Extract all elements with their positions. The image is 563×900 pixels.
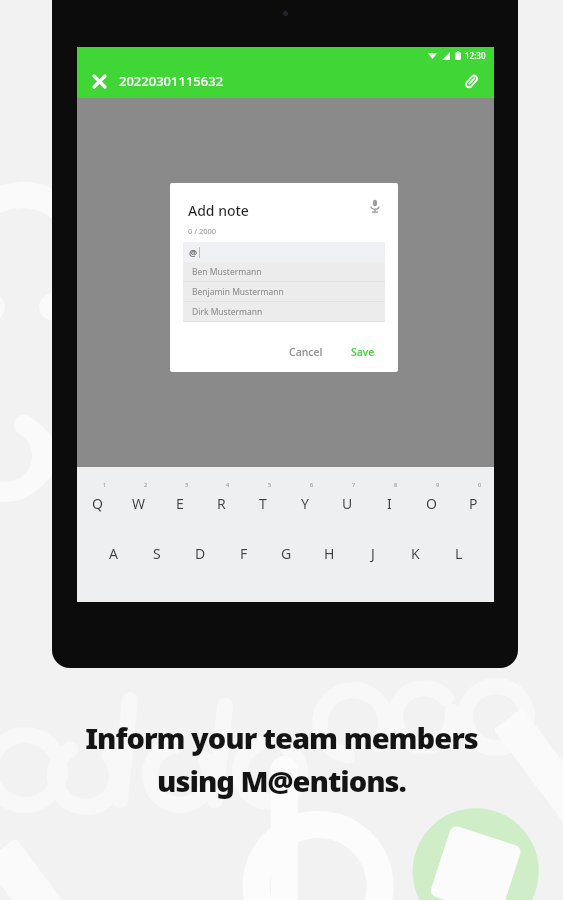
button[interactable]: Cancel — [281, 340, 331, 364]
button[interactable]: 7 — [326, 481, 368, 519]
staticText: 3 — [185, 481, 189, 488]
button[interactable]: 9 — [410, 481, 452, 519]
staticText: using M@entions. — [157, 761, 406, 800]
button[interactable]: @ — [183, 242, 385, 262]
button[interactable]: J — [351, 536, 394, 570]
staticText: I — [387, 494, 392, 513]
button[interactable]: Save — [343, 340, 383, 364]
button[interactable]: F — [222, 536, 265, 570]
staticText: P — [469, 494, 478, 513]
button[interactable]: H — [308, 536, 351, 570]
staticText: Dirk Mustermann — [192, 306, 263, 318]
staticText: 0 — [478, 481, 482, 488]
staticText: Benjamin Mustermann — [192, 286, 284, 298]
button[interactable]: G — [265, 536, 308, 570]
staticText: W — [132, 494, 146, 513]
staticText: S — [153, 544, 161, 563]
staticText: 2 — [144, 481, 148, 488]
staticText: Inform your team members — [85, 718, 478, 757]
staticText: Save — [351, 345, 375, 359]
button[interactable]: L — [437, 536, 480, 570]
staticText: 4 — [226, 481, 230, 488]
staticText: Q — [92, 494, 103, 513]
staticText: Y — [301, 494, 309, 513]
staticText: U — [342, 494, 353, 513]
button[interactable]: Dirk Mustermann — [183, 302, 385, 321]
button[interactable]: K — [394, 536, 437, 570]
button[interactable]: 1 — [77, 481, 118, 519]
staticText: L — [455, 544, 463, 563]
staticText: G — [281, 544, 292, 563]
staticText: A — [109, 544, 118, 563]
button[interactable]: Ben Mustermann — [183, 262, 385, 281]
staticText: @ — [189, 246, 198, 258]
staticText: 20220301115632 — [119, 72, 224, 90]
button[interactable]: 4 — [200, 481, 242, 519]
button[interactable]: A — [91, 536, 135, 570]
staticText: 5 — [268, 481, 272, 488]
staticText: F — [240, 544, 248, 563]
staticText: Cancel — [289, 345, 323, 359]
staticText: 1 — [103, 481, 107, 488]
button[interactable]: Voice input — [365, 196, 385, 216]
button[interactable]: 6 — [284, 481, 326, 519]
staticText: H — [324, 544, 335, 563]
staticText: J — [371, 544, 375, 563]
button[interactable]: Attach file — [459, 69, 483, 93]
staticText: 0 / 2000 — [188, 226, 217, 236]
staticText: 7 — [352, 481, 356, 488]
button[interactable]: 5 — [242, 481, 284, 519]
staticText: D — [195, 544, 206, 563]
staticText: 9 — [436, 481, 440, 488]
staticText: 8 — [394, 481, 398, 488]
button[interactable]: S — [135, 536, 179, 570]
staticText: R — [217, 494, 226, 513]
staticText: 12:30 — [465, 50, 486, 61]
button[interactable]: Close — [88, 70, 110, 92]
button[interactable]: 2 — [118, 481, 159, 519]
staticText: O — [426, 494, 437, 513]
staticText: E — [176, 494, 184, 513]
staticText: Ben Mustermann — [192, 266, 262, 278]
button[interactable]: 0 — [452, 481, 494, 519]
staticText: K — [411, 544, 420, 563]
button[interactable]: 8 — [368, 481, 410, 519]
button[interactable]: 3 — [159, 481, 200, 519]
staticText: T — [259, 494, 267, 513]
staticText: 6 — [310, 481, 314, 488]
button[interactable]: D — [179, 536, 222, 570]
staticText: Add note — [188, 201, 249, 220]
button[interactable]: Benjamin Mustermann — [183, 282, 385, 301]
